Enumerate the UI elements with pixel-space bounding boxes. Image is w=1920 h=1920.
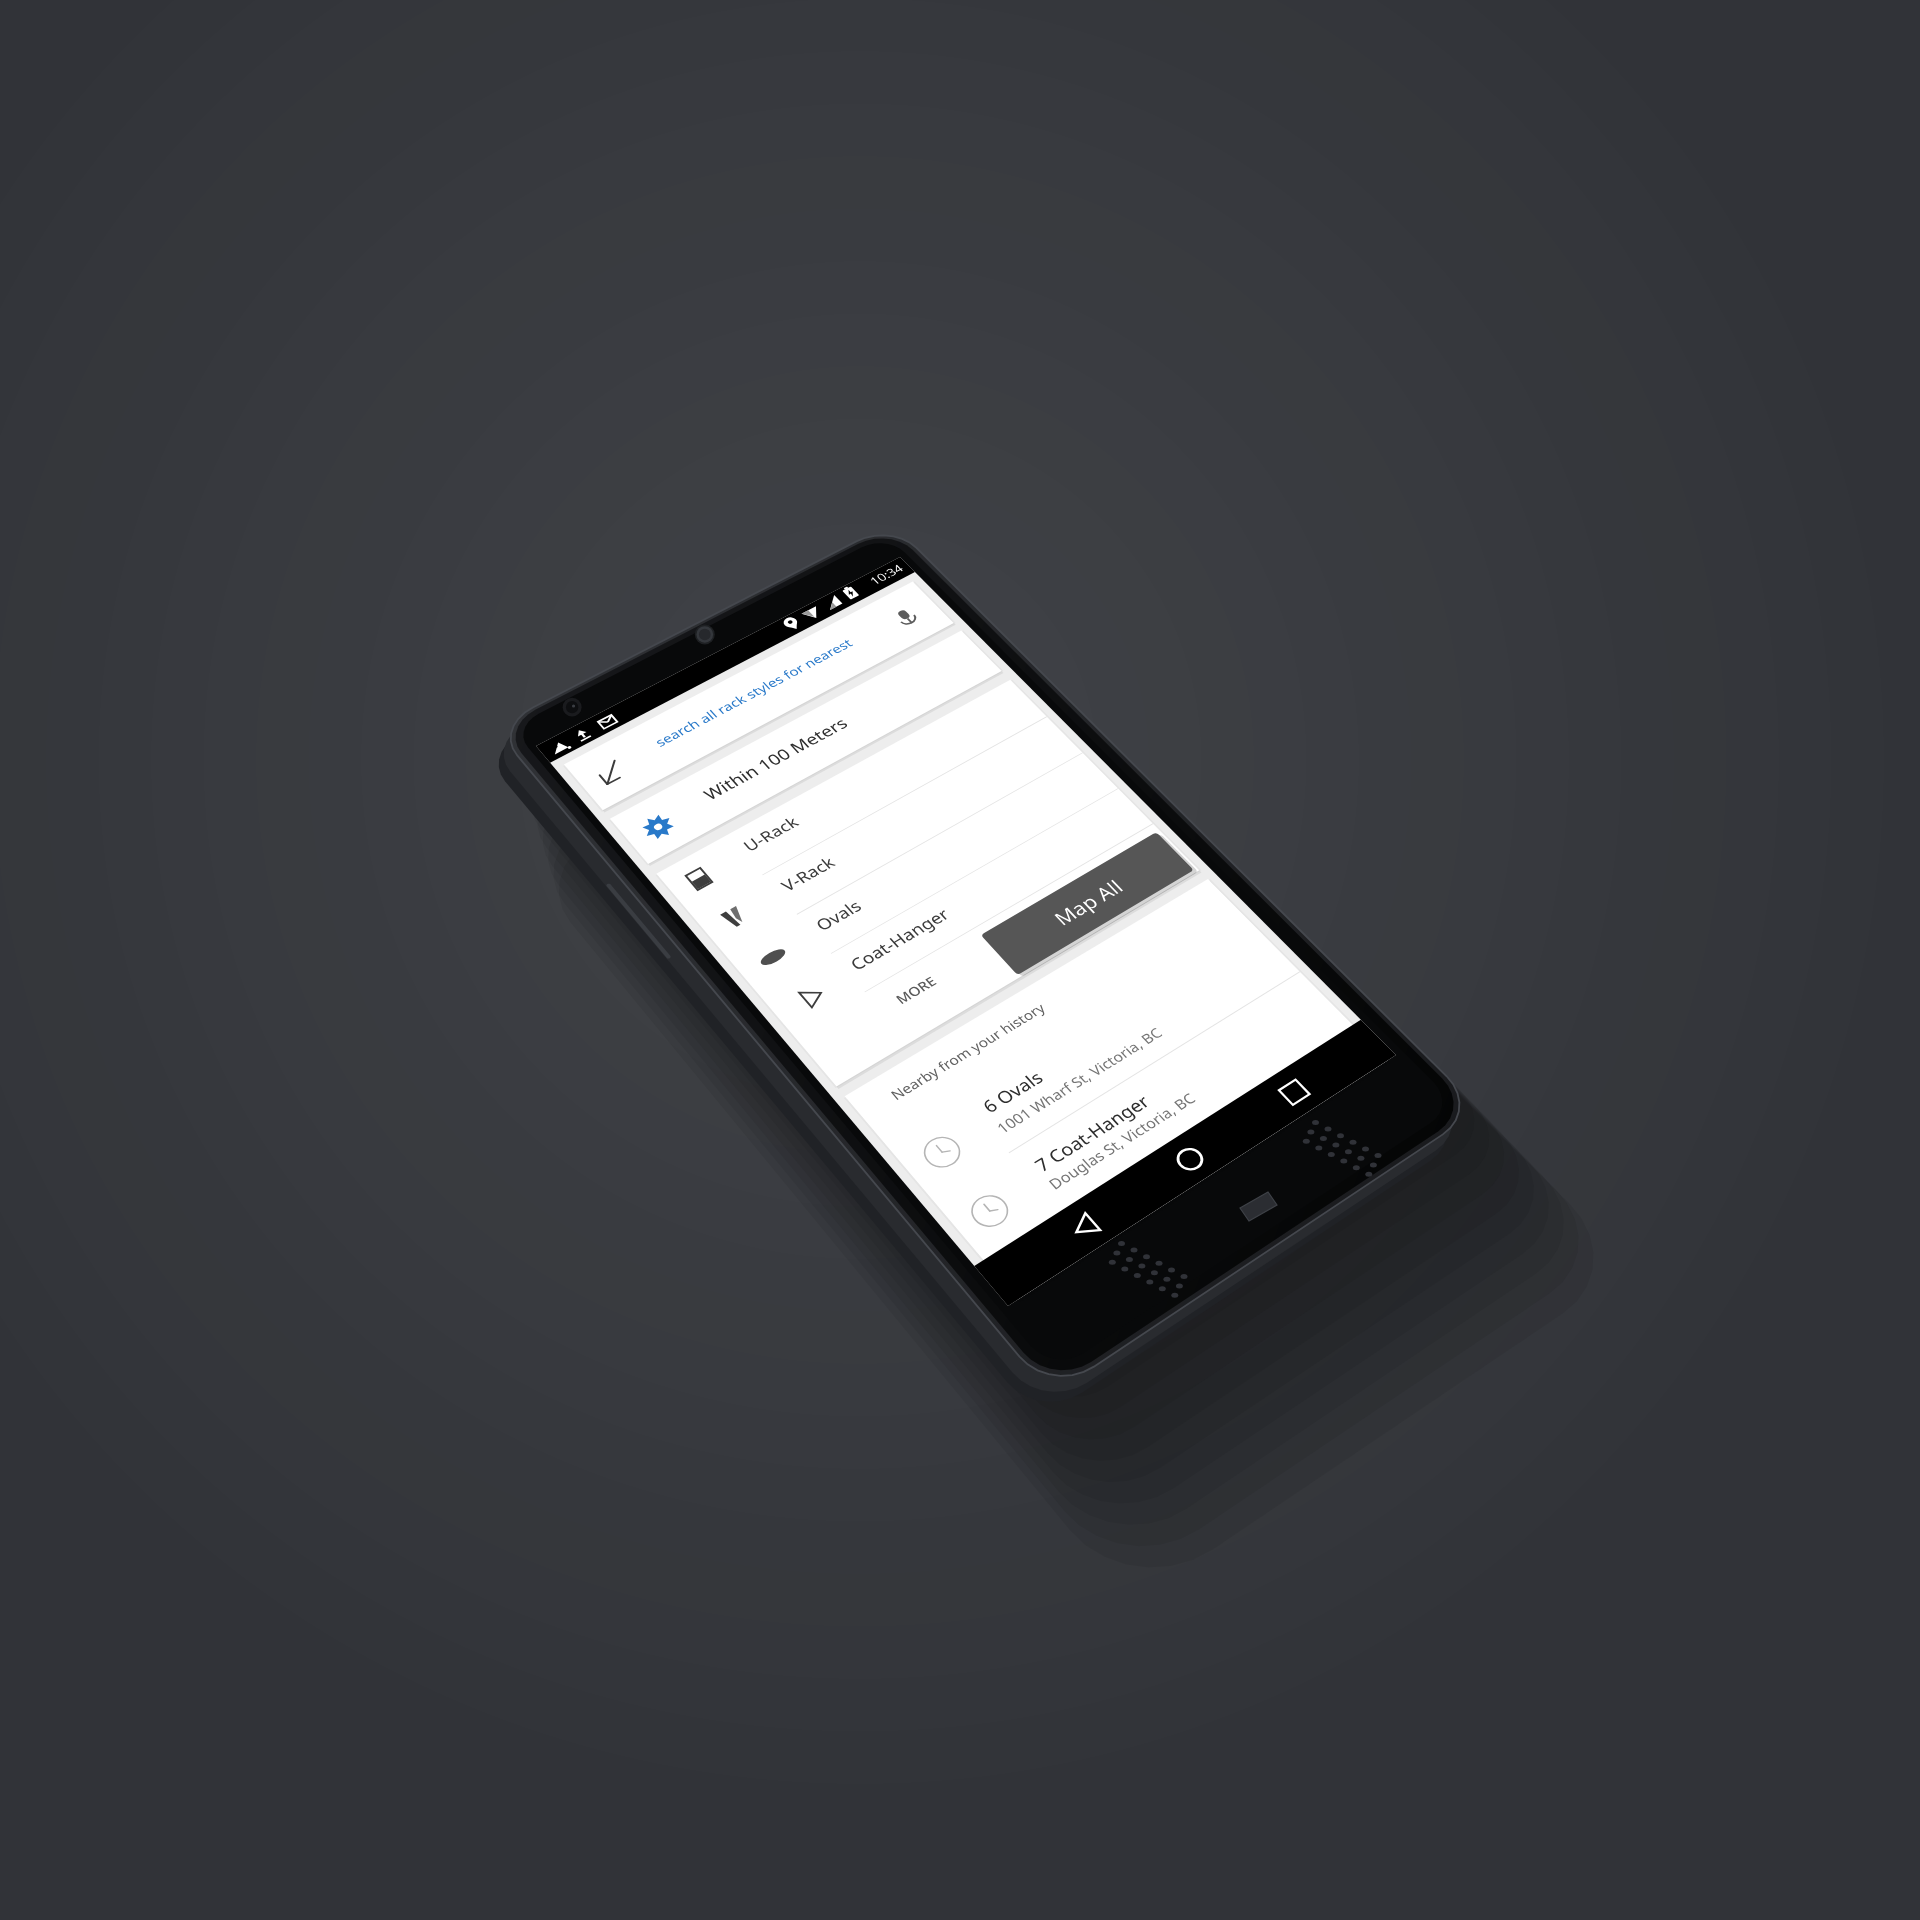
button[interactable]: Recent apps	[1241, 1052, 1345, 1133]
button[interactable]: Back	[1031, 1183, 1139, 1269]
button[interactable]	[792, 824, 1199, 1087]
button[interactable]	[933, 972, 1350, 1257]
button[interactable]	[725, 753, 1118, 995]
button[interactable]: Voice search	[878, 588, 940, 638]
button[interactable]: Home	[1138, 1116, 1244, 1200]
button[interactable]: Search all rack styles for nearest	[619, 560, 945, 690]
button[interactable]	[656, 680, 1046, 915]
button[interactable]: Back	[564, 582, 954, 811]
button[interactable]	[981, 832, 1194, 975]
button[interactable]	[691, 717, 1083, 955]
button[interactable]	[875, 911, 1300, 1200]
button[interactable]	[610, 630, 1002, 864]
